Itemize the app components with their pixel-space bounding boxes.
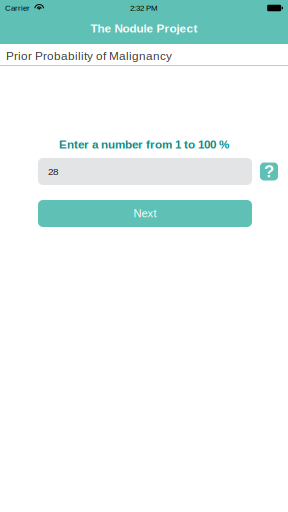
staticText: 28: [48, 166, 58, 177]
staticText: ?: [264, 162, 274, 181]
staticText: Carrier: [5, 4, 30, 12]
staticText: Next: [133, 207, 156, 220]
button[interactable]: Help: [260, 162, 278, 180]
button[interactable]: Next: [38, 200, 252, 227]
staticText: Prior Probability of Malignancy: [6, 49, 172, 62]
staticText: Enter a number from 1 to 100 %: [59, 138, 229, 151]
staticText: 2:32 PM: [130, 4, 158, 12]
staticText: The Nodule Project: [90, 22, 197, 35]
